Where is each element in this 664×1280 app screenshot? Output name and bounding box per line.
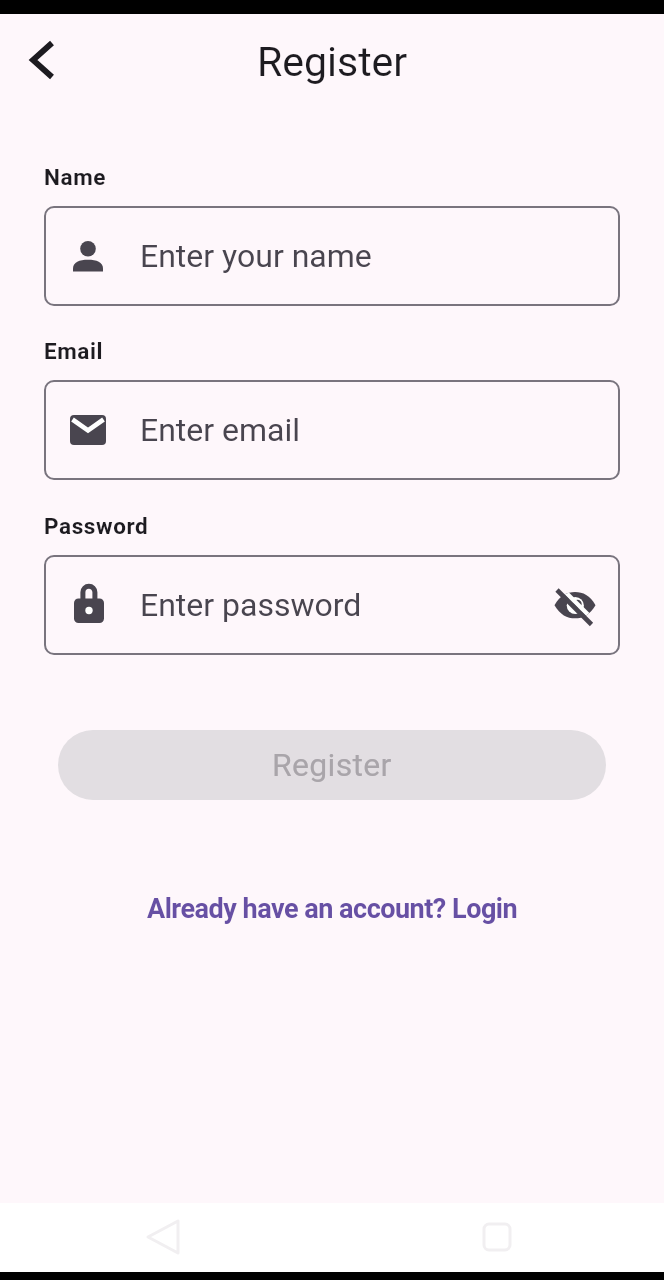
- staticText: Password: [44, 513, 149, 539]
- staticText: Register: [257, 38, 408, 86]
- staticText: Enter password: [140, 586, 551, 624]
- staticText: Email: [44, 338, 104, 364]
- button[interactable]: Already have an account? Login: [0, 881, 664, 937]
- button[interactable]: Enter your name: [44, 206, 620, 306]
- staticText: Already have an account? Login: [147, 893, 518, 925]
- staticText: Register: [272, 746, 392, 784]
- button[interactable]: Enter email: [44, 380, 620, 480]
- button[interactable]: [551, 581, 599, 629]
- staticText: Name: [44, 164, 107, 190]
- button[interactable]: Enter password: [44, 555, 620, 655]
- button[interactable]: [16, 38, 64, 86]
- button[interactable]: Register: [58, 730, 606, 800]
- staticText: Enter email: [140, 411, 620, 449]
- staticText: Enter your name: [140, 237, 620, 275]
